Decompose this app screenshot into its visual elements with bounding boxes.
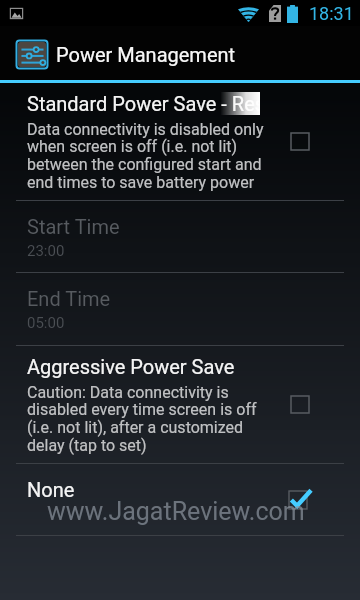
other: Power Management [16,40,48,69]
staticText: None [27,478,75,501]
other: Toggle off [290,132,310,151]
other: No SIM card [269,5,281,22]
button[interactable]: Power Management [0,26,360,83]
other: Battery full [287,5,298,23]
button[interactable]: End Time [0,273,360,345]
staticText: 05:00 [27,314,65,332]
staticText: Start Time [27,215,120,238]
button[interactable]: Standard Power Save - Restrict Data [0,83,360,200]
other: Toggle on [288,489,312,510]
staticText: Caution: Data connectivity is disabled e… [27,383,270,455]
staticText: Aggressive Power Save [27,355,235,378]
button[interactable]: None [0,464,360,535]
staticText: End Time [27,287,111,310]
staticText: 23:00 [27,242,65,260]
staticText: Power Management [56,43,236,66]
other: Wi-Fi [238,6,259,22]
button[interactable]: Start Time [0,201,360,272]
button[interactable]: Aggressive Power Save [0,346,360,463]
other: Screenshot captured [8,6,25,21]
other: Toggle off [290,395,310,414]
staticText: Data connectivity is disabled only when … [27,120,270,192]
staticText: 18:31 [309,3,354,24]
staticText: Standard Power Save - Restrict Data [27,92,260,115]
staticText: www.JagatReview.com [47,497,305,526]
